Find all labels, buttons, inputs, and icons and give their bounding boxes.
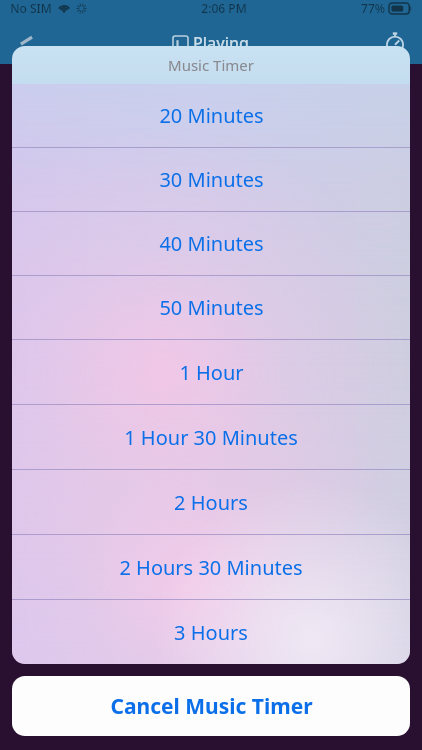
staticText: 1 Hour 30 Minutes <box>124 424 298 451</box>
staticText: 40 Minutes <box>159 230 264 257</box>
staticText: Playing <box>193 32 249 54</box>
button[interactable]: 1 Hour 30 Minutes <box>12 405 410 469</box>
button[interactable]: Back <box>10 26 44 60</box>
staticText: 3 Hours <box>174 619 248 646</box>
staticText: 77% <box>361 0 385 16</box>
button[interactable]: 1 Hour <box>12 340 410 404</box>
button[interactable]: 3 Hours <box>12 600 410 664</box>
staticText: No SIM <box>10 0 52 16</box>
button[interactable]: 20 Minutes <box>12 84 410 147</box>
staticText: 20 Minutes <box>159 102 264 129</box>
staticText: 2 Hours <box>174 489 248 516</box>
button[interactable]: Cancel Music Timer <box>12 676 410 736</box>
staticText: Music Timer <box>168 55 254 75</box>
staticText: 30 Minutes <box>159 166 264 193</box>
button[interactable]: 2 Hours <box>12 470 410 534</box>
staticText: 50 Minutes <box>159 294 264 321</box>
staticText: Cancel Music Timer <box>110 692 313 721</box>
staticText: 1 Hour <box>179 359 244 386</box>
button[interactable]: 2 Hours 30 Minutes <box>12 535 410 599</box>
staticText: 2:06 PM <box>201 0 247 16</box>
button[interactable]: 40 Minutes <box>12 212 410 275</box>
staticText: 2 Hours 30 Minutes <box>119 554 303 581</box>
button[interactable]: 50 Minutes <box>12 276 410 339</box>
button[interactable]: 30 Minutes <box>12 148 410 211</box>
button[interactable]: Music Timer <box>378 26 412 60</box>
